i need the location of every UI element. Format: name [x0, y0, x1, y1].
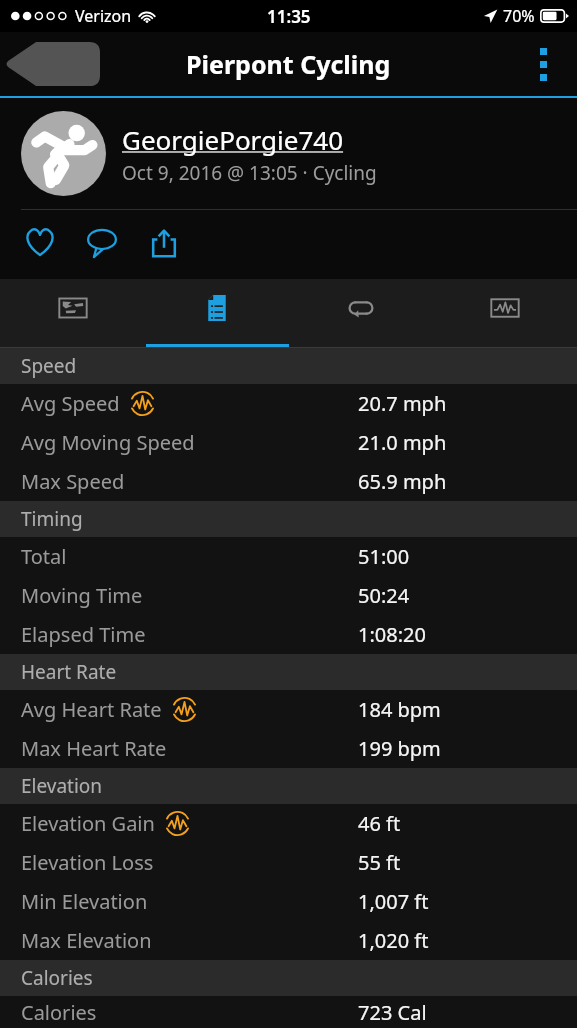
staticText: Avg Heart Rate	[21, 696, 162, 723]
staticText: Timing	[21, 506, 83, 532]
staticText: 55 ft	[358, 849, 401, 876]
button[interactable]: Max Speed	[0, 462, 577, 501]
staticText: Moving Time	[21, 582, 143, 609]
staticText: 1,020 ft	[358, 927, 429, 954]
staticText: Pierpont Cycling	[186, 47, 391, 81]
staticText: 11:35	[267, 5, 311, 28]
staticText: Elevation	[21, 773, 103, 799]
button[interactable]: More options	[521, 39, 565, 89]
button[interactable]: Avg Heart Rate	[0, 690, 577, 729]
staticText: Elapsed Time	[21, 621, 146, 648]
staticText: Elevation Loss	[21, 849, 154, 876]
button[interactable]: Elevation Loss	[0, 843, 577, 882]
staticText: 51:00	[358, 543, 410, 570]
staticText: Heart Rate	[21, 659, 117, 685]
button[interactable]: Details	[145, 279, 289, 347]
staticText: 20.7 mph	[358, 390, 447, 417]
button[interactable]: Comment	[79, 220, 125, 266]
button[interactable]: Total	[0, 537, 577, 576]
button[interactable]: Elapsed Time	[0, 615, 577, 654]
button[interactable]: Charts	[433, 279, 577, 347]
button[interactable]: Avg Speed	[0, 384, 577, 423]
button[interactable]: Back	[6, 42, 100, 86]
staticText: 1,007 ft	[358, 888, 429, 915]
button[interactable]: Calories	[0, 996, 577, 1028]
staticText: Total	[21, 543, 67, 570]
staticText: Max Speed	[21, 468, 125, 495]
button[interactable]: Max Elevation	[0, 921, 577, 960]
staticText: Oct 9, 2016 @ 13:05 · Cycling	[122, 160, 377, 186]
staticText: 50:24	[358, 582, 410, 609]
staticText: Max Heart Rate	[21, 735, 167, 762]
staticText: 1:08:20	[358, 621, 426, 648]
staticText: Elevation Gain	[21, 810, 155, 837]
staticText: 21.0 mph	[358, 429, 447, 456]
staticText: Calories	[21, 999, 97, 1026]
staticText: Avg Moving Speed	[21, 429, 195, 456]
button[interactable]: Share	[141, 220, 187, 266]
staticText: 723 Cal	[358, 999, 427, 1026]
staticText: 65.9 mph	[358, 468, 447, 495]
button[interactable]: Max Heart Rate	[0, 729, 577, 768]
staticText: Verizon	[75, 5, 132, 27]
button[interactable]: Map	[0, 279, 145, 347]
staticText: 199 bpm	[358, 735, 441, 762]
button[interactable]: Avg Moving Speed	[0, 423, 577, 462]
button[interactable]: Laps	[289, 279, 433, 347]
staticText: Max Elevation	[21, 927, 152, 954]
button[interactable]: GeorgiePorgie740	[122, 122, 344, 157]
staticText: Min Elevation	[21, 888, 148, 915]
staticText: Avg Speed	[21, 390, 120, 417]
button[interactable]: Min Elevation	[0, 882, 577, 921]
staticText: Speed	[21, 353, 77, 379]
staticText: 184 bpm	[358, 696, 441, 723]
button[interactable]: Moving Time	[0, 576, 577, 615]
button[interactable]: Like	[17, 220, 63, 266]
button[interactable]: Elevation Gain	[0, 804, 577, 843]
staticText: 70%	[503, 5, 535, 27]
staticText: Calories	[21, 965, 93, 991]
staticText: 46 ft	[358, 810, 401, 837]
